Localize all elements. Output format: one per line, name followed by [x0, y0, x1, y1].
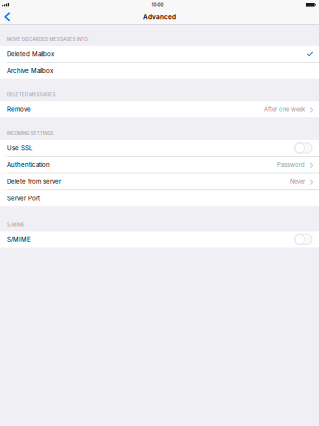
staticText: S/MIME	[7, 222, 25, 227]
staticText: Deleted Mailbox	[7, 50, 54, 58]
button[interactable]: Archive Mailbox	[0, 63, 319, 79]
staticText: Delete from server	[7, 178, 61, 185]
button[interactable]: Authentication	[0, 157, 319, 173]
staticText: 10:00	[151, 2, 163, 8]
button[interactable]: Back	[0, 10, 17, 24]
button[interactable]: Deleted Mailbox	[0, 46, 319, 62]
staticText: Password	[277, 161, 305, 168]
staticText: Use SSL	[7, 144, 32, 152]
staticText: INCOMING SETTINGS	[7, 131, 54, 136]
staticText: DELETED MESSAGES	[7, 92, 55, 97]
button[interactable]: Use SSL	[0, 140, 319, 156]
staticText: Authentication	[7, 161, 50, 168]
staticText: S/MIME	[7, 236, 31, 243]
staticText: After one week	[264, 106, 305, 113]
staticText: MOVE DISCARDED MESSAGES INTO:	[7, 37, 88, 42]
button[interactable]: Server Port	[0, 190, 319, 206]
staticText: Advanced	[143, 13, 176, 21]
button[interactable]: Remove	[0, 101, 319, 117]
button[interactable]: S/MIME	[0, 231, 319, 247]
staticText: Server Port	[7, 195, 40, 202]
button[interactable]: Delete from server	[0, 173, 319, 189]
staticText: Remove	[7, 106, 31, 113]
staticText: Archive Mailbox	[7, 67, 53, 74]
staticText: Never	[290, 178, 305, 185]
